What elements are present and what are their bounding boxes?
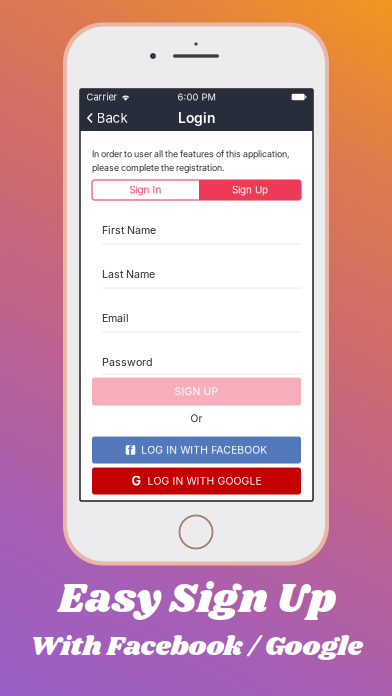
staticText: Carrier bbox=[86, 91, 117, 103]
staticText: In order to user all the features of thi… bbox=[92, 149, 290, 173]
staticText: Email bbox=[102, 311, 129, 324]
staticText: With Facebook / Google bbox=[29, 627, 362, 667]
staticText: LOG IN WITH FACEBOOK bbox=[141, 444, 267, 456]
staticText: First Name bbox=[102, 223, 156, 236]
staticText: Password bbox=[102, 355, 153, 368]
button[interactable]: Back bbox=[80, 105, 136, 131]
staticText: 6:00 PM bbox=[177, 91, 215, 103]
button[interactable]: G bbox=[92, 467, 301, 494]
staticText: Last Name bbox=[102, 267, 155, 280]
button[interactable]: Sign In bbox=[92, 180, 199, 200]
staticText: SIGN UP bbox=[174, 385, 218, 398]
staticText: Back bbox=[96, 110, 127, 126]
staticText: f bbox=[128, 443, 133, 457]
staticText: Easy Sign Up bbox=[58, 570, 336, 630]
button[interactable]: f bbox=[92, 436, 301, 463]
button[interactable]: Sign Up bbox=[199, 180, 301, 200]
staticText: Sign Up bbox=[232, 184, 268, 196]
button[interactable]: SIGN UP bbox=[92, 377, 301, 405]
staticText: Sign In bbox=[129, 184, 161, 196]
staticText: Login bbox=[178, 110, 215, 126]
staticText: LOG IN WITH GOOGLE bbox=[147, 475, 261, 487]
staticText: G bbox=[131, 473, 141, 489]
staticText: Or bbox=[190, 412, 202, 425]
